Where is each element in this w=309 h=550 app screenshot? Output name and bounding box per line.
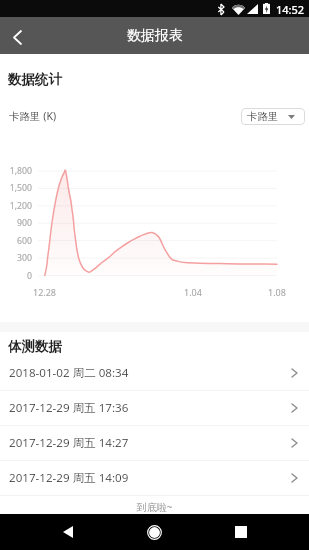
- staticText: 1,500: [9, 182, 32, 194]
- staticText: 12.28: [33, 286, 57, 298]
- staticText: 900: [17, 217, 32, 229]
- button[interactable]: 2017-12-29 周五 17:36: [0, 391, 309, 425]
- staticText: 1,200: [9, 200, 32, 212]
- staticText: 2017-12-29 周五 14:27: [9, 435, 129, 451]
- button[interactable]: Back: [50, 514, 86, 550]
- staticText: 1.08: [268, 286, 286, 298]
- button[interactable]: 2017-12-29 周五 14:27: [0, 426, 309, 460]
- staticText: 2018-01-02 周二 08:34: [9, 365, 129, 381]
- staticText: 1,800: [9, 165, 32, 177]
- button[interactable]: 卡路里: [241, 108, 305, 125]
- staticText: 14:52: [276, 2, 305, 17]
- staticText: 数据报表: [127, 27, 183, 45]
- button[interactable]: Recents: [223, 514, 259, 550]
- button[interactable]: 2018-01-02 周二 08:34: [0, 356, 309, 390]
- button[interactable]: Back: [0, 17, 35, 54]
- button[interactable]: 2017-12-29 周五 14:09: [0, 461, 309, 495]
- staticText: 2017-12-29 周五 17:36: [9, 400, 129, 416]
- button[interactable]: Home: [136, 514, 172, 550]
- staticText: 卡路里: [247, 110, 279, 123]
- staticText: 300: [17, 252, 32, 264]
- staticText: 2017-12-29 周五 14:09: [9, 470, 129, 486]
- staticText: 数据统计: [8, 71, 62, 88]
- staticText: 600: [17, 235, 32, 247]
- staticText: 卡路里 (K): [9, 109, 57, 123]
- staticText: 1.04: [184, 286, 202, 298]
- staticText: 0: [27, 270, 32, 282]
- staticText: 到底啦~: [0, 500, 309, 514]
- staticText: 体测数据: [8, 338, 62, 355]
